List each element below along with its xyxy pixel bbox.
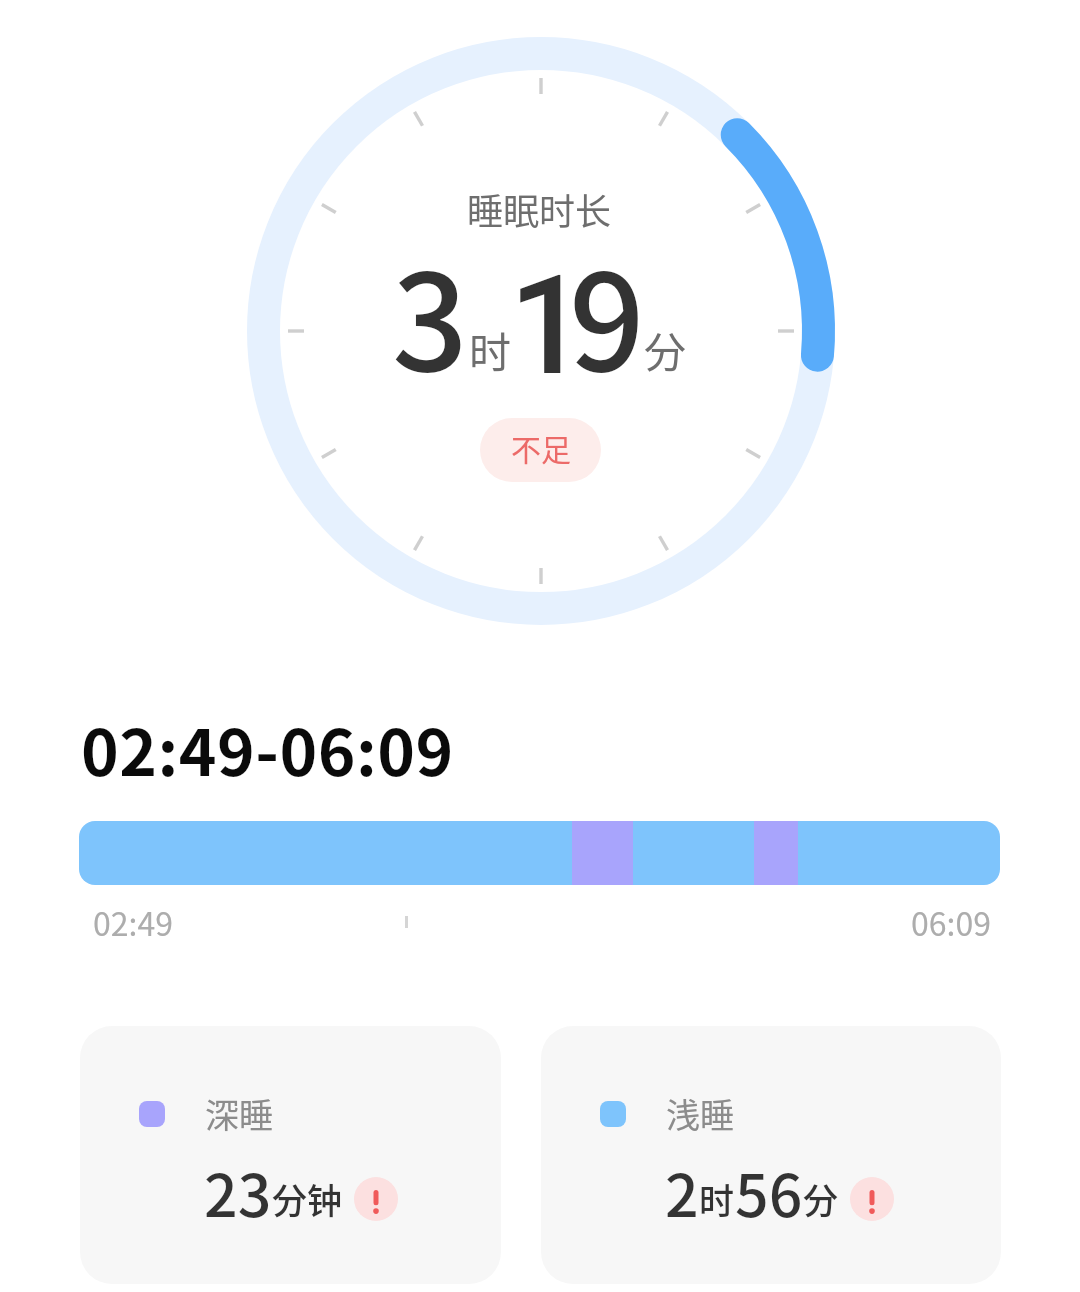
staticText: 02:49 bbox=[93, 899, 173, 945]
staticText: 深睡 bbox=[205, 1089, 273, 1138]
staticText: 分 bbox=[644, 319, 687, 380]
staticText: 时 bbox=[469, 319, 512, 380]
staticText: 56 bbox=[735, 1149, 803, 1234]
button[interactable]: 浅睡 bbox=[541, 1026, 1001, 1284]
button[interactable] bbox=[79, 821, 1000, 885]
button[interactable]: 深睡 bbox=[80, 1026, 501, 1284]
staticText: 9 bbox=[569, 217, 645, 410]
staticText: 3 bbox=[392, 217, 468, 410]
staticText: 2 bbox=[665, 1149, 699, 1234]
staticText: 分钟 bbox=[272, 1173, 343, 1224]
staticText: 06:09 bbox=[911, 899, 991, 945]
staticText: 1 bbox=[509, 246, 587, 407]
staticText: 时 bbox=[699, 1173, 735, 1224]
staticText: 浅睡 bbox=[666, 1089, 734, 1138]
staticText: 分 bbox=[803, 1173, 839, 1224]
staticText: 02:49-06:09 bbox=[81, 702, 454, 795]
other: Warning bbox=[850, 1177, 894, 1221]
other: Warning bbox=[354, 1177, 398, 1221]
staticText: 不足 bbox=[511, 426, 571, 469]
staticText: 23 bbox=[204, 1149, 272, 1234]
button[interactable]: 不足 bbox=[480, 418, 601, 482]
staticText: 睡眠时长 bbox=[467, 183, 612, 235]
